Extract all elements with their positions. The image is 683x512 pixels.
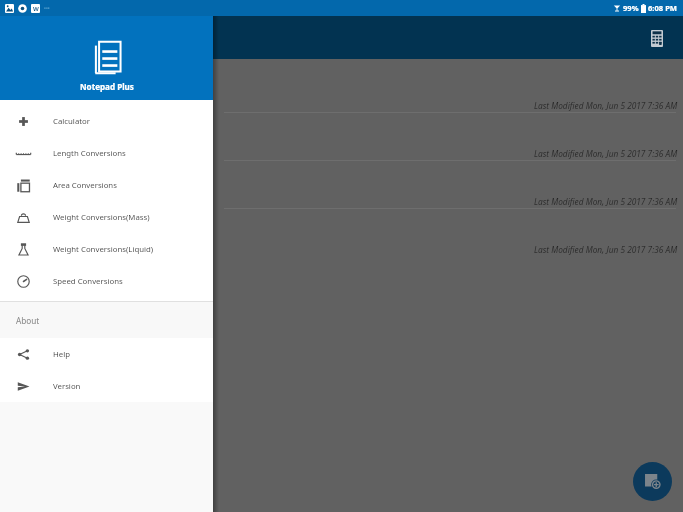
button[interactable]: Calculator xyxy=(643,24,671,52)
button[interactable]: Area Conversions xyxy=(0,169,213,201)
button[interactable]: Length Conversions xyxy=(0,137,213,169)
button[interactable]: Speed Conversions xyxy=(0,265,213,297)
button[interactable]: Last Modified Mon, Jun 5 2017 7:36 AM xyxy=(0,59,683,113)
staticText: Notepad Plus xyxy=(80,81,134,92)
staticText: 6:08 PM xyxy=(648,3,678,13)
staticText: Weight Conversions(Mass) xyxy=(53,212,150,223)
staticText: Area Conversions xyxy=(53,180,117,191)
button[interactable]: Version xyxy=(0,370,213,402)
staticText: Weight Conversions(Liquid) xyxy=(53,244,154,255)
staticText: Last Modified Mon, Jun 5 2017 7:36 AM xyxy=(534,100,678,111)
button[interactable]: Last Modified Mon, Jun 5 2017 7:36 AM xyxy=(0,161,683,209)
staticText: 99% xyxy=(623,3,639,13)
button[interactable]: Weight Conversions(Mass) xyxy=(0,201,213,233)
staticText: About xyxy=(16,315,40,326)
button[interactable]: Last Modified Mon, Jun 5 2017 7:36 AM xyxy=(0,113,683,161)
button[interactable]: Calculator xyxy=(0,105,213,137)
staticText: Last Modified Mon, Jun 5 2017 7:36 AM xyxy=(534,148,678,159)
staticText: W xyxy=(33,5,39,13)
staticText: Last Modified Mon, Jun 5 2017 7:36 AM xyxy=(534,244,678,255)
staticText: Length Conversions xyxy=(53,148,126,159)
staticText: Last Modified Mon, Jun 5 2017 7:36 AM xyxy=(534,196,678,207)
staticText: Help xyxy=(53,349,70,360)
button[interactable]: Weight Conversions(Liquid) xyxy=(0,233,213,265)
button[interactable]: New note xyxy=(633,462,672,501)
staticText: ••• xyxy=(44,5,50,12)
staticText: Speed Conversions xyxy=(53,276,123,287)
staticText: Version xyxy=(53,381,81,392)
staticText: Calculator xyxy=(53,116,91,127)
button[interactable]: Last Modified Mon, Jun 5 2017 7:36 AM xyxy=(0,209,683,257)
button[interactable]: Help xyxy=(0,338,213,370)
